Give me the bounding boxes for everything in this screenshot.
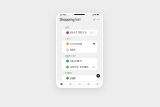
- button[interactable]: More options: [95, 18, 100, 21]
- button[interactable]: Green beans: [62, 64, 97, 70]
- button[interactable]: Beef mince: [62, 30, 97, 35]
- staticText: Green beans: [70, 65, 88, 69]
- button[interactable]: Basil: [62, 75, 97, 81]
- button[interactable]: Tab: [57, 81, 66, 87]
- button[interactable]: Spinach: [62, 58, 97, 64]
- button[interactable]: Edit list: [93, 18, 95, 21]
- staticText: Spinach: [70, 59, 82, 63]
- button[interactable]: Cheddar: [62, 41, 97, 47]
- staticText: Cheddar: [70, 42, 82, 45]
- button[interactable]: Tab: [75, 81, 84, 87]
- staticText: Basil: [70, 77, 76, 80]
- staticText: 1 kg: [91, 66, 95, 68]
- staticText: Dairy: [65, 37, 71, 40]
- button[interactable]: Tab: [66, 81, 75, 87]
- button[interactable]: Add item: [96, 74, 100, 78]
- staticText: Suggestions: [65, 55, 76, 57]
- staticText: Milk: [70, 48, 75, 51]
- staticText: Meat: [65, 26, 70, 29]
- staticText: 9:41: [60, 13, 66, 16]
- button[interactable]: Tab: [84, 81, 93, 87]
- button[interactable]: Milk: [62, 47, 97, 53]
- button[interactable]: Tab: [93, 81, 102, 87]
- staticText: Shopping list: [59, 18, 80, 22]
- staticText: Produce: [65, 72, 72, 75]
- staticText: Beef mince: [70, 31, 87, 34]
- staticText: 500 g: [90, 31, 95, 34]
